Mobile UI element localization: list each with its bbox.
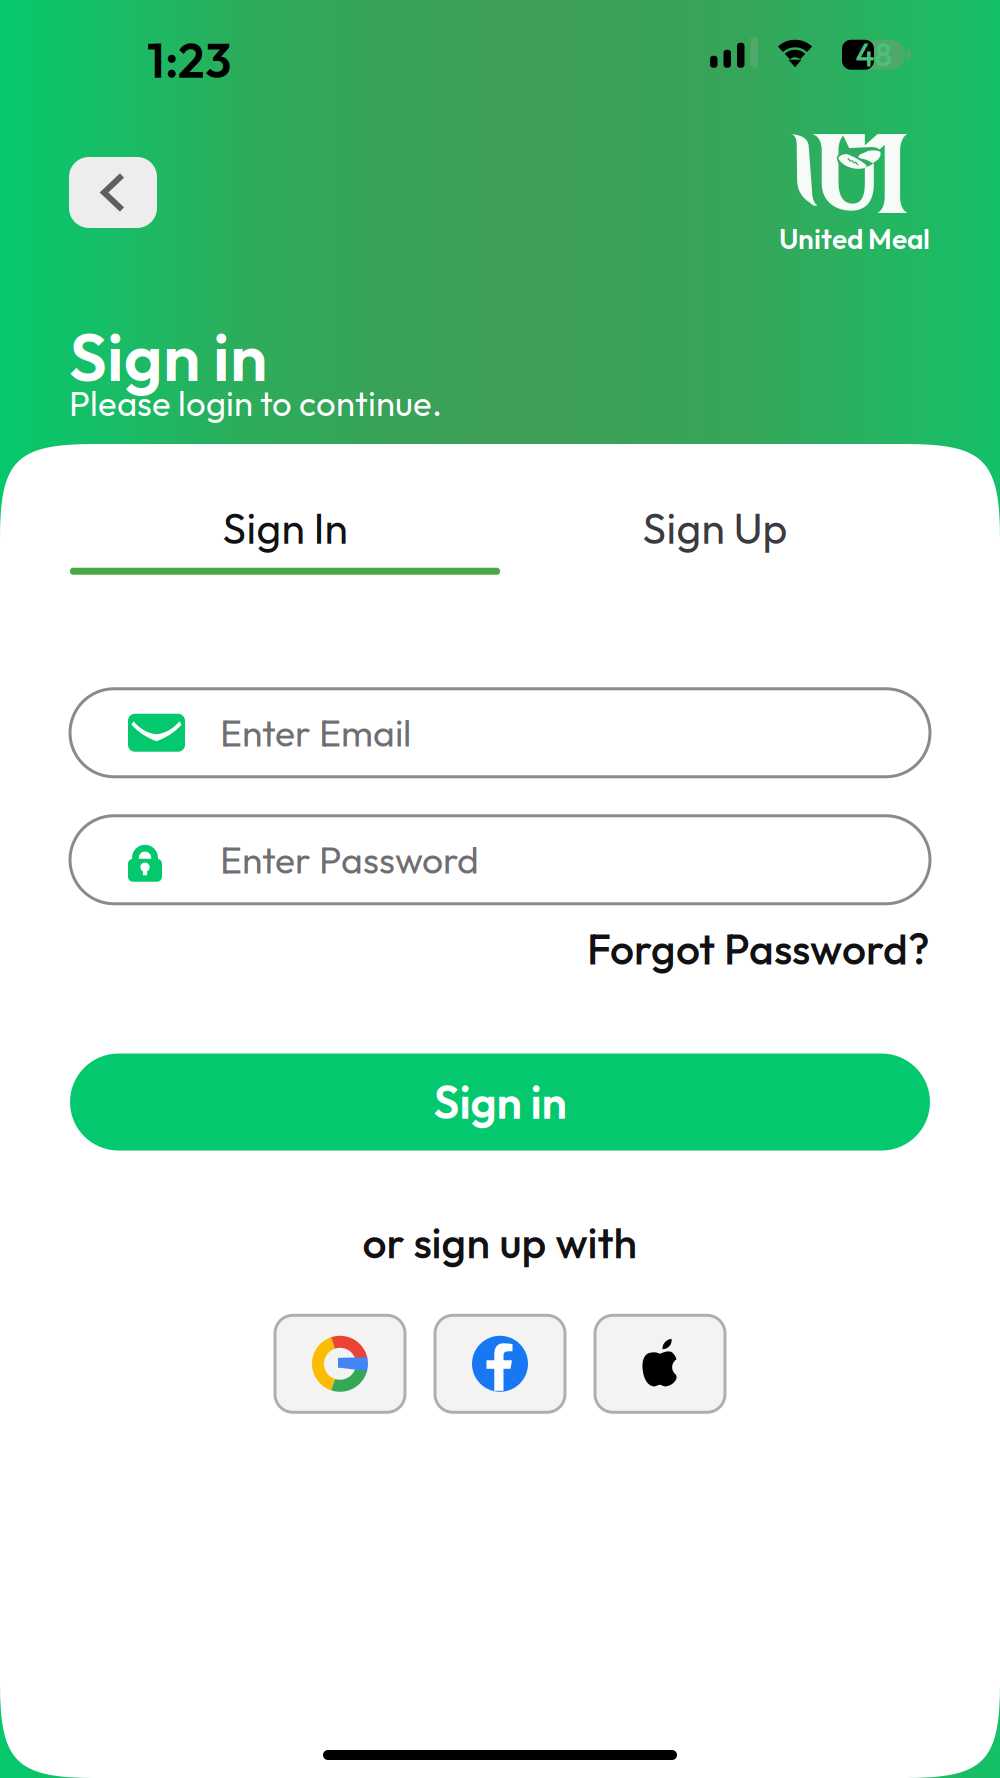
staticText: Sign Up xyxy=(642,501,787,555)
staticText: Enter Password xyxy=(220,836,479,883)
staticText: United Meal xyxy=(779,221,930,256)
staticText: Enter Email xyxy=(220,709,411,756)
staticText: Sign in xyxy=(433,1073,566,1131)
staticText: Please login to continue. xyxy=(69,381,442,425)
button[interactable]: Sign In xyxy=(70,444,500,575)
staticText: or sign up with xyxy=(362,1215,637,1269)
staticText: Sign In xyxy=(222,501,347,555)
staticText: Sign in xyxy=(69,314,267,398)
button[interactable]: Back xyxy=(69,157,157,228)
button[interactable]: Sign in with Google xyxy=(275,1315,405,1412)
staticText: Forgot Password? xyxy=(587,922,930,976)
button[interactable]: Sign in xyxy=(70,1053,930,1150)
staticText: 48 xyxy=(855,35,892,75)
button[interactable]: Sign Up xyxy=(500,444,930,575)
button[interactable]: Enter Email xyxy=(70,689,930,777)
button[interactable]: Enter Password xyxy=(70,816,930,904)
button[interactable]: Sign in with Facebook xyxy=(435,1315,565,1412)
button[interactable]: Forgot Password? xyxy=(70,922,930,976)
staticText: 1:23 xyxy=(147,30,231,90)
button[interactable]: Sign in with Apple xyxy=(595,1315,725,1412)
